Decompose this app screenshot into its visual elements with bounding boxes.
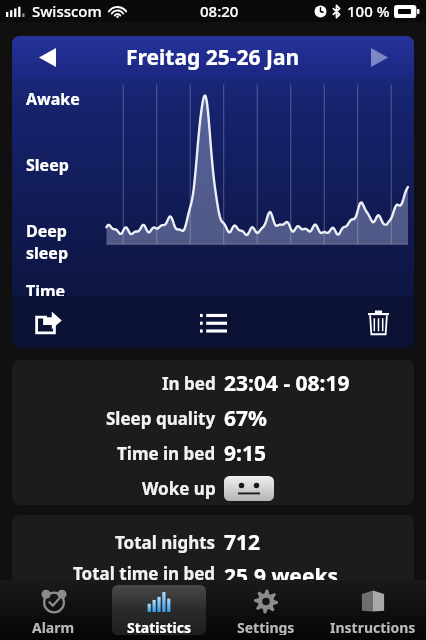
staticText: Time [26, 280, 66, 296]
staticText: 712 [224, 528, 261, 557]
staticText: Total time in bed [73, 562, 216, 585]
staticText: 23:04 - 08:19 [224, 369, 350, 398]
staticText: sleep [26, 242, 69, 264]
button[interactable]: Statistics [112, 585, 206, 635]
button[interactable]: Instructions [325, 585, 420, 635]
button[interactable]: Next night [362, 40, 396, 74]
staticText: Swisscom [32, 1, 102, 21]
staticText: 25.9 weeks [224, 562, 339, 585]
staticText: Settings [237, 618, 295, 635]
button[interactable]: Share [26, 300, 70, 344]
staticText: 9:15 [224, 439, 266, 468]
staticText: Sleep quality [106, 407, 216, 430]
staticText: Time in bed [117, 442, 216, 465]
staticText: Sleep [26, 154, 69, 176]
button[interactable]: Settings [218, 585, 313, 635]
staticText: Deep [26, 220, 67, 242]
staticText: 67% [224, 404, 267, 433]
staticText: Alarm [32, 618, 75, 635]
staticText: Freitag 25-26 Jan [126, 43, 300, 72]
staticText: Total nights [115, 531, 216, 554]
staticText: 08:20 [200, 1, 239, 21]
button[interactable]: List view [191, 300, 235, 344]
staticText: Woke up [142, 477, 216, 500]
staticText: 100 % [347, 1, 390, 21]
button[interactable]: Previous night [30, 40, 64, 74]
button[interactable]: Alarm [6, 585, 100, 635]
staticText: Statistics [127, 618, 191, 635]
staticText: Awake [26, 88, 80, 110]
staticText: In bed [162, 372, 216, 395]
button[interactable]: Delete [356, 300, 400, 344]
staticText: Instructions [330, 618, 416, 635]
